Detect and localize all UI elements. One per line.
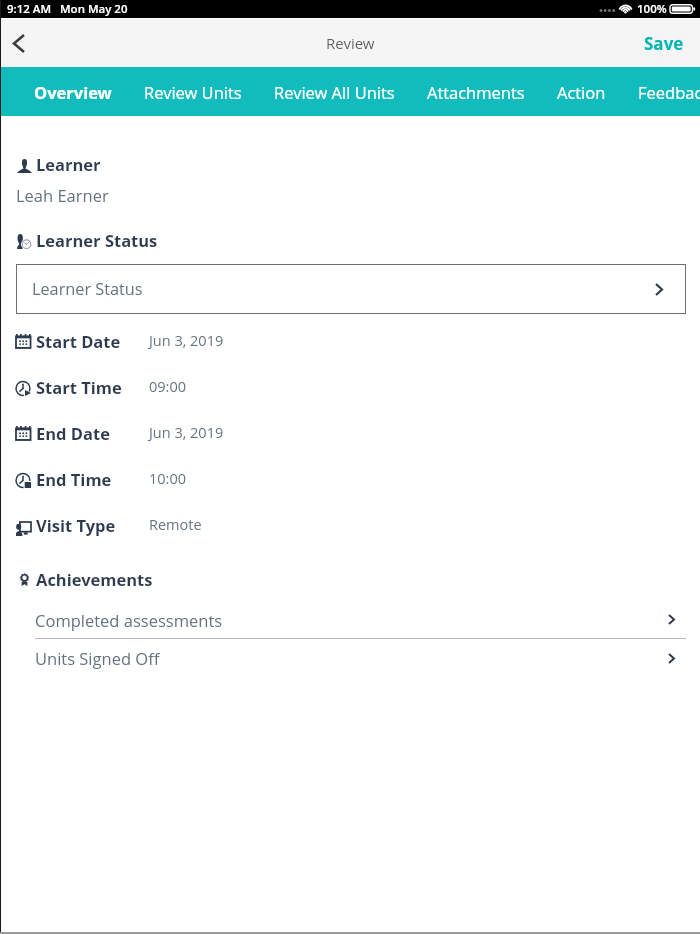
staticText: Achievements xyxy=(36,568,153,590)
staticText: Start Date xyxy=(36,330,121,352)
staticText: Save xyxy=(644,32,684,55)
staticText: Review Units xyxy=(144,81,242,103)
button[interactable]: Feedback xyxy=(622,67,700,116)
staticText: Attachments xyxy=(427,81,525,103)
button[interactable]: Learner Status xyxy=(16,264,686,314)
staticText: Visit Type xyxy=(36,514,116,536)
staticText: Completed assessments xyxy=(35,609,223,631)
button[interactable]: Save xyxy=(626,19,700,67)
staticText: Action xyxy=(557,81,606,103)
staticText: 9:12 AM xyxy=(7,1,52,17)
staticText: Review xyxy=(326,33,375,53)
button[interactable]: Review All Units xyxy=(258,67,411,116)
staticText: Feedback xyxy=(638,81,700,103)
button[interactable]: Completed assessments xyxy=(35,601,686,639)
button[interactable]: Back xyxy=(0,19,37,67)
staticText: Start Time xyxy=(36,376,122,398)
staticText: Mon May 20 xyxy=(60,1,128,17)
staticText: End Time xyxy=(36,468,112,490)
staticText: Learner Status xyxy=(32,278,143,300)
staticText: Units Signed Off xyxy=(35,647,160,669)
staticText: Learner Status xyxy=(36,229,158,251)
button[interactable]: Review Units xyxy=(128,67,258,116)
staticText: End Date xyxy=(36,422,110,444)
button[interactable]: Attachments xyxy=(411,67,541,116)
staticText: 09:00 xyxy=(149,377,187,397)
button[interactable]: Action xyxy=(541,67,622,116)
staticText: Review All Units xyxy=(274,81,395,103)
staticText: 100% xyxy=(637,1,667,17)
staticText: 10:00 xyxy=(149,469,187,489)
staticText: Learner xyxy=(36,153,101,175)
staticText: Jun 3, 2019 xyxy=(149,331,224,351)
button[interactable]: Overview xyxy=(18,67,128,116)
button[interactable]: Units Signed Off xyxy=(35,639,686,677)
staticText: Remote xyxy=(149,515,202,535)
staticText: Leah Earner xyxy=(16,184,109,206)
staticText: Jun 3, 2019 xyxy=(149,423,224,443)
staticText: Overview xyxy=(34,81,112,103)
